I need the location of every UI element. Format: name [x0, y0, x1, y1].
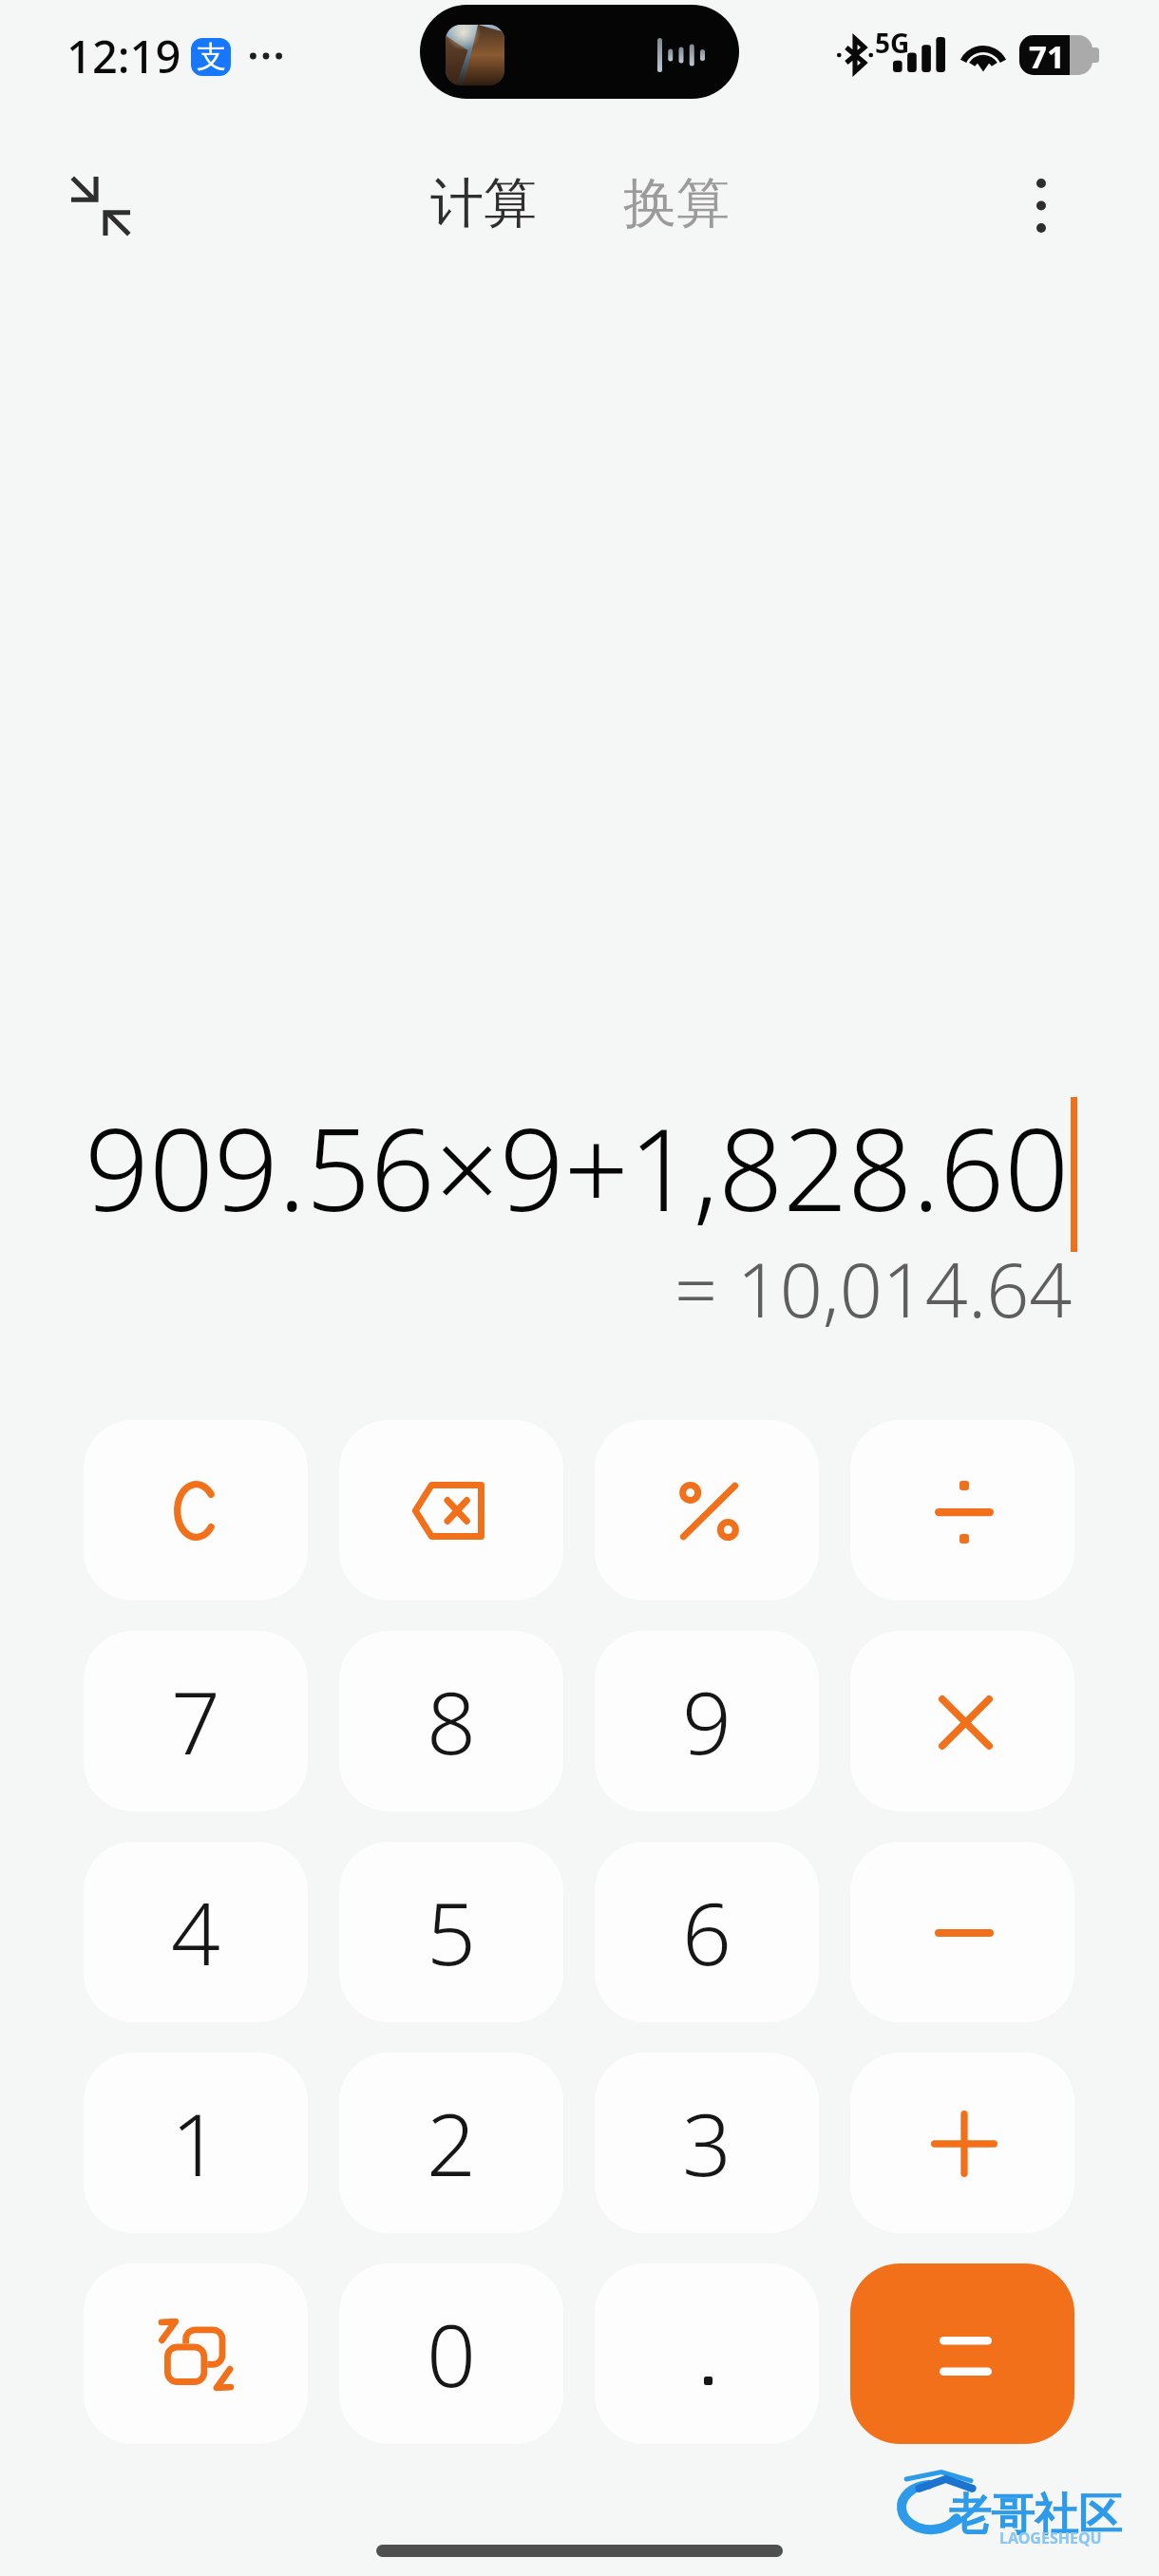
staticText: = 10,014.64: [674, 1238, 1073, 1340]
button[interactable]: Divide: [850, 1420, 1074, 1601]
button[interactable]: Percent: [595, 1420, 819, 1601]
button[interactable]: C: [84, 1420, 308, 1601]
button[interactable]: 计算: [427, 161, 541, 247]
staticText: LAOGESHEQU: [999, 2528, 1102, 2548]
staticText: 2: [427, 2084, 476, 2202]
staticText: 5G: [875, 25, 910, 61]
staticText: 3: [682, 2084, 731, 2202]
button[interactable]: 3: [595, 2053, 819, 2233]
button[interactable]: Equals: [850, 2263, 1074, 2444]
staticText: 6: [682, 1873, 731, 1991]
staticText: 71: [1029, 35, 1065, 75]
button[interactable]: Decimal point: [595, 2263, 819, 2444]
staticText: 0: [427, 2295, 476, 2413]
staticText: 老哥社区: [947, 2488, 1122, 2543]
staticText: 909.56×9+1,828.60: [85, 1090, 1070, 1233]
button[interactable]: 8: [339, 1631, 563, 1811]
staticText: 换算: [623, 170, 730, 237]
button[interactable]: Minus: [850, 1842, 1074, 2022]
button[interactable]: Convert: [84, 2263, 308, 2444]
button[interactable]: 0: [339, 2263, 563, 2444]
button[interactable]: Backspace: [339, 1420, 563, 1601]
button[interactable]: 9: [595, 1631, 819, 1811]
staticText: 计算: [430, 170, 537, 237]
button[interactable]: 换算: [619, 161, 733, 247]
button[interactable]: 5: [339, 1842, 563, 2022]
button[interactable]: 1: [84, 2053, 308, 2233]
staticText: 1: [171, 2084, 220, 2202]
staticText: 7: [171, 1662, 220, 1780]
button[interactable]: 4: [84, 1842, 308, 2022]
button[interactable]: 7: [84, 1631, 308, 1811]
button[interactable]: More options: [1011, 175, 1072, 236]
button[interactable]: 6: [595, 1842, 819, 2022]
staticText: 12:19: [66, 26, 181, 86]
button[interactable]: Collapse: [66, 171, 134, 239]
staticText: 8: [427, 1662, 476, 1780]
staticText: 4: [171, 1873, 220, 1991]
button[interactable]: Multiply: [850, 1631, 1074, 1811]
button[interactable]: 2: [339, 2053, 563, 2233]
staticText: 5: [427, 1873, 476, 1991]
staticText: 支: [197, 38, 226, 75]
staticText: 9: [682, 1662, 731, 1780]
button[interactable]: Plus: [850, 2053, 1074, 2233]
